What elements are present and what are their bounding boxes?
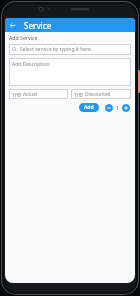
button[interactable]: THB (9, 89, 68, 99)
button[interactable]: Decrease quantity (105, 104, 113, 112)
staticText: Discounted (85, 91, 111, 98)
staticText: Service (24, 20, 52, 31)
staticText: THB (12, 92, 21, 98)
button[interactable]: THB (71, 89, 131, 99)
staticText: Select service by typing it here. (20, 46, 93, 53)
button[interactable]: Add Description (9, 58, 131, 86)
staticText: Add Service (9, 34, 38, 41)
staticText: Add (84, 104, 94, 111)
staticText: 1 (116, 104, 119, 111)
button[interactable]: Increase quantity (122, 104, 130, 112)
button[interactable]: Back (7, 20, 18, 31)
button[interactable]: Select service by typing it here. (9, 44, 131, 55)
staticText: Add Description (12, 61, 50, 68)
staticText: THB (74, 92, 83, 98)
staticText: Actual (23, 91, 37, 98)
button[interactable]: Add (79, 103, 99, 112)
